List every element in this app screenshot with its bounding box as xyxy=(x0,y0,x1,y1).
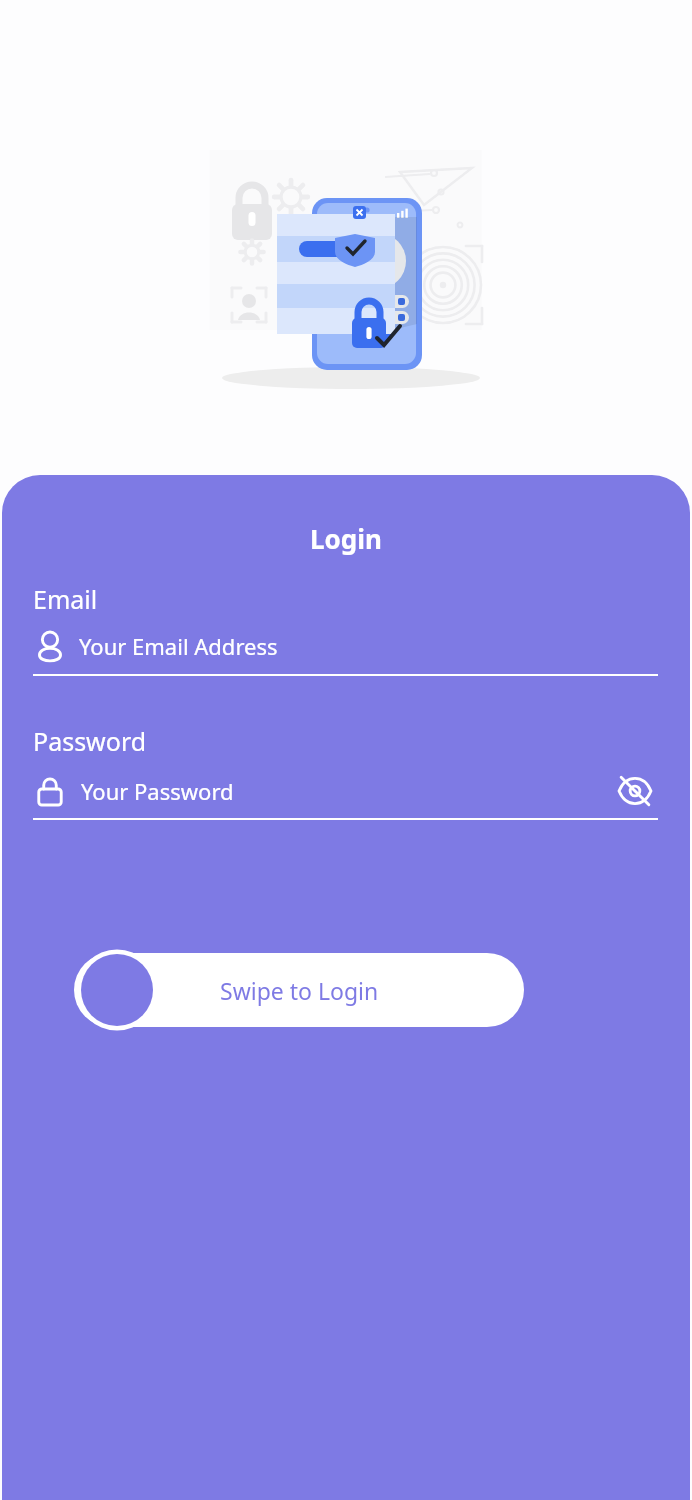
button[interactable]: Your Password xyxy=(33,768,658,814)
staticText: Email xyxy=(33,582,98,616)
button[interactable]: Show password xyxy=(612,768,658,814)
staticText: Swipe to Login xyxy=(220,975,379,1006)
button[interactable]: Your Email Address xyxy=(33,626,658,666)
staticText: Login xyxy=(310,521,382,556)
staticText: Password xyxy=(33,724,147,758)
button[interactable]: Swipe to Login xyxy=(72,945,524,1035)
staticText: Your Password xyxy=(81,776,234,806)
staticText: Your Email Address xyxy=(79,631,278,661)
